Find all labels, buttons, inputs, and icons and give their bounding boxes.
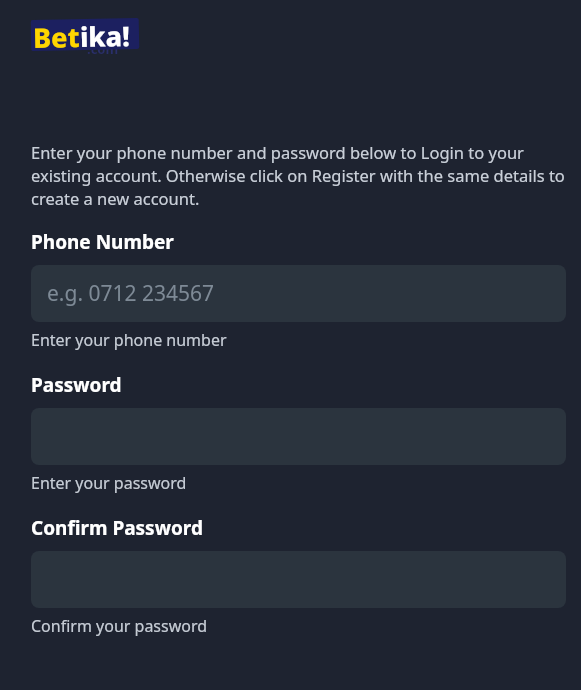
staticText: Confirm your password [31,615,208,637]
button[interactable]: Phone Number input [31,265,566,322]
staticText: Enter your phone number and password bel… [31,141,566,210]
other: Betika.com logo [31,18,147,62]
staticText: Confirm Password [31,515,203,541]
staticText: Enter your phone number [31,329,227,351]
staticText: ika! [80,17,130,55]
staticText: Phone Number [31,229,174,255]
staticText: .com [87,40,119,58]
staticText: Bet [33,18,80,56]
staticText: e.g. 0712 234567 [47,279,215,308]
staticText: Password [31,372,122,398]
staticText: Enter your password [31,472,187,494]
